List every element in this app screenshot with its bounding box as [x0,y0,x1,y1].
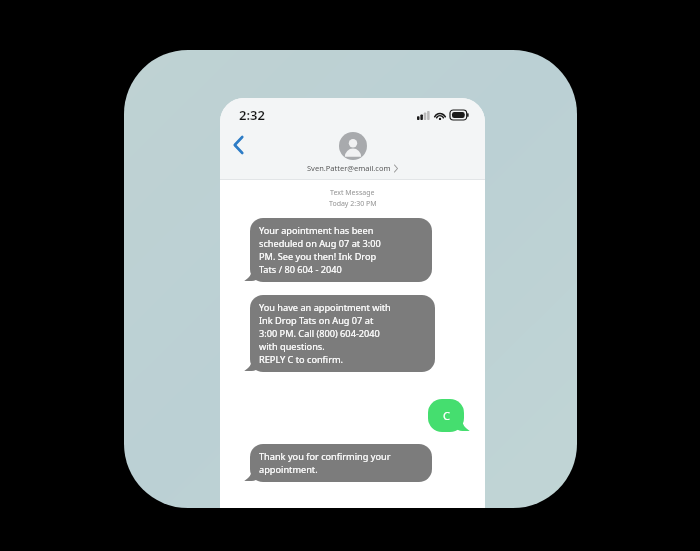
button[interactable]: Your apointment has been scheduled on Au… [250,218,432,282]
button[interactable]: C [428,399,464,432]
staticText: Today 2:30 PM [329,199,377,209]
button[interactable]: Back [224,131,252,159]
button[interactable]: Sven.Patter@email.com [307,129,398,173]
staticText: C [443,408,450,423]
staticText: 2:32 [239,106,265,124]
button[interactable]: Thank you for confirming your appointmen… [250,444,432,482]
button[interactable]: You have an appointment with Ink Drop Ta… [250,295,435,372]
staticText: Your apointment has been scheduled on Au… [259,224,381,276]
staticText: You have an appointment with Ink Drop Ta… [259,301,391,366]
staticText: Thank you for confirming your appointmen… [259,450,391,476]
staticText: Sven.Patter@email.com [307,163,391,173]
staticText: Text Message [330,188,375,198]
